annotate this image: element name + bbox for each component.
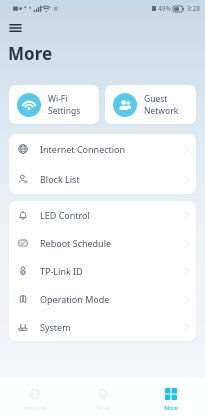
staticText: Internet Connection xyxy=(40,143,126,155)
staticText: Network xyxy=(24,404,46,411)
staticText: More xyxy=(164,404,178,411)
staticText: Operation Mode xyxy=(40,293,110,305)
staticText: Reboot Schedule xyxy=(40,237,112,249)
staticText: Block List xyxy=(40,173,80,185)
button[interactable]: System xyxy=(9,313,196,341)
button[interactable]: TP-Link ID xyxy=(9,257,196,285)
button[interactable]: Reboot Schedule xyxy=(9,229,196,257)
button[interactable]: Guest xyxy=(105,85,196,124)
button[interactable]: More xyxy=(137,378,205,419)
staticText: LED Control xyxy=(40,209,90,221)
staticText: Network xyxy=(144,105,179,117)
staticText: 3:28 xyxy=(187,4,200,13)
button[interactable]: Menu xyxy=(5,20,25,35)
button[interactable]: Internet Connection xyxy=(9,134,196,164)
staticText: System xyxy=(40,321,71,333)
button[interactable]: Block List xyxy=(9,164,196,194)
staticText: Wi-Fi xyxy=(48,93,68,105)
staticText: More xyxy=(8,42,53,65)
staticText: 49% xyxy=(158,4,171,13)
staticText: Settings xyxy=(48,105,81,117)
staticText: TP-Link ID xyxy=(40,265,83,277)
staticText: Guest xyxy=(144,93,168,105)
button[interactable]: Operation Mode xyxy=(9,285,196,313)
button[interactable]: LED Control xyxy=(9,201,196,229)
staticText: Tools xyxy=(96,404,110,411)
button[interactable]: Wi-Fi xyxy=(9,85,99,124)
